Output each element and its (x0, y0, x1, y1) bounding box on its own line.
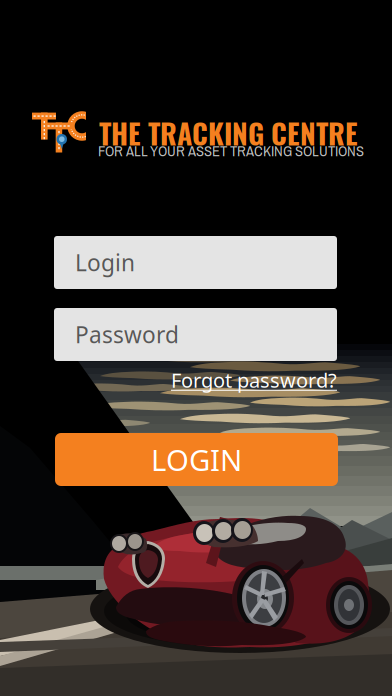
staticText: Password (75, 319, 179, 350)
button[interactable]: Login (54, 236, 337, 289)
button[interactable]: LOGIN (55, 433, 338, 486)
staticText: Forgot password? (171, 366, 337, 394)
staticText: THE TRACKING CENTRE (99, 112, 358, 153)
button[interactable]: Forgot password? (54, 369, 337, 391)
button[interactable]: Password (54, 308, 337, 361)
staticText: LOGIN (151, 439, 242, 479)
staticText: Login (75, 247, 135, 278)
staticText: FOR ALL YOUR ASSET TRACKING SOLUTIONS (98, 141, 364, 161)
